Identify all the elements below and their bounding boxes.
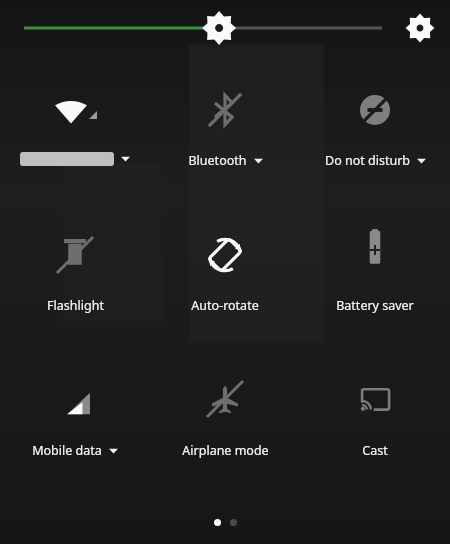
staticText: Cast: [362, 442, 388, 459]
button[interactable]: Flashlight: [0, 215, 150, 360]
staticText: Bluetooth: [188, 152, 247, 169]
button[interactable]: Airplane mode: [150, 360, 300, 505]
staticText: Do not disturb: [325, 152, 410, 169]
staticText: Auto-rotate: [191, 297, 259, 314]
staticText: Flashlight: [47, 297, 104, 314]
staticText: Battery saver: [336, 297, 414, 314]
button[interactable]: Battery saver: [300, 215, 450, 360]
button[interactable]: Mobile data: [0, 360, 150, 505]
button[interactable]: Bluetooth: [150, 70, 300, 215]
button[interactable]: Auto-rotate: [150, 215, 300, 360]
staticText: Mobile data: [32, 442, 102, 459]
button[interactable]: Cast: [300, 360, 450, 505]
button[interactable]: Wi-Fi: [0, 70, 150, 215]
button[interactable]: Settings: [400, 8, 440, 48]
staticText: Airplane mode: [182, 442, 269, 459]
button[interactable]: Brightness: [12, 6, 390, 50]
button[interactable]: Do not disturb: [300, 70, 450, 215]
